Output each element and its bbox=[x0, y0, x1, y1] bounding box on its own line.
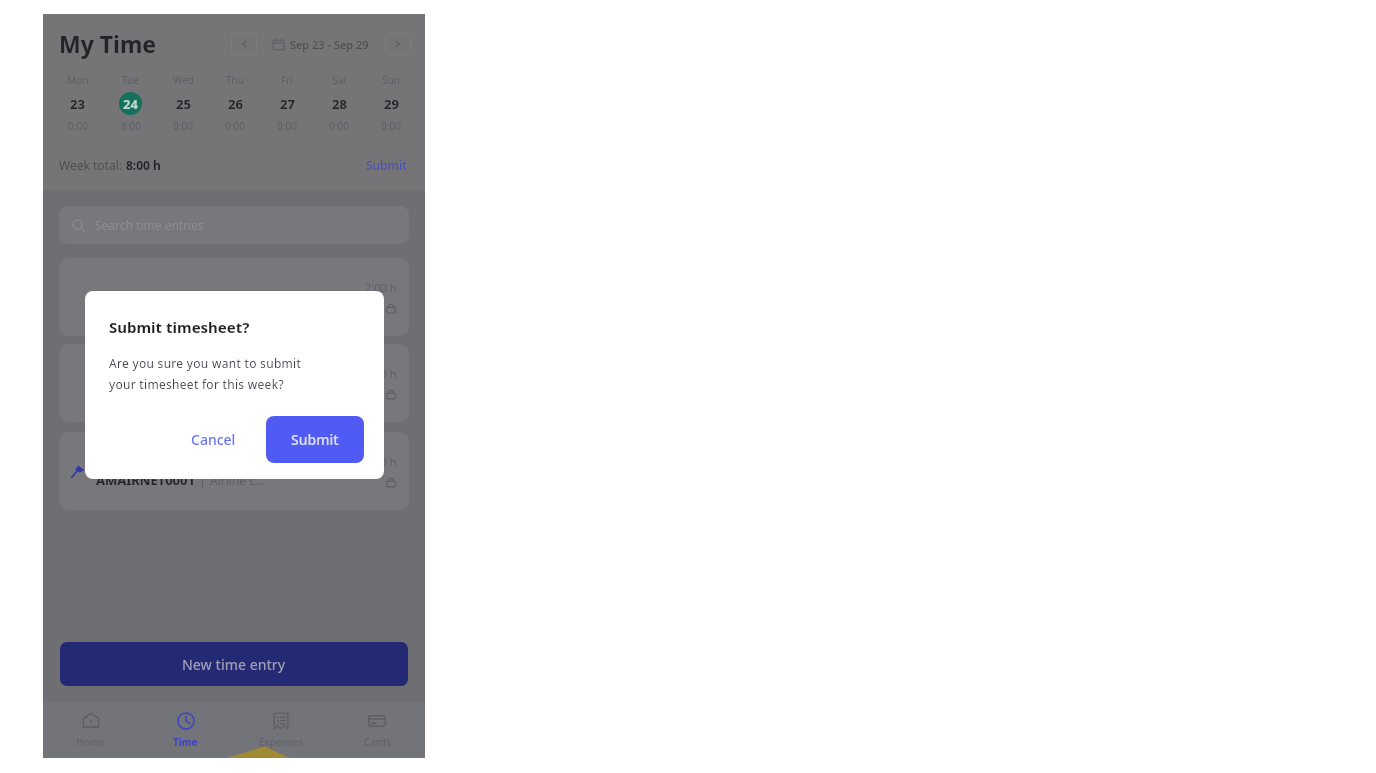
staticText: 26 bbox=[228, 95, 243, 113]
staticText: Thu bbox=[226, 73, 244, 87]
button[interactable]: Cancel bbox=[177, 422, 250, 457]
staticText: Sun bbox=[382, 73, 400, 87]
button[interactable]: Expenses bbox=[233, 702, 329, 758]
staticText: 0:00 bbox=[68, 119, 88, 133]
staticText: 0:00 bbox=[277, 119, 297, 133]
staticText: Sat bbox=[332, 73, 347, 87]
staticText: Week total: bbox=[59, 157, 126, 173]
staticText: New time entry bbox=[182, 655, 286, 674]
button[interactable]: Submit bbox=[364, 155, 409, 175]
staticText: Sep 23 - Sep 29 bbox=[290, 37, 369, 52]
staticText: Time bbox=[173, 735, 198, 749]
staticText: 24 bbox=[123, 95, 138, 113]
staticText: Home bbox=[76, 735, 105, 749]
button[interactable]: Wed bbox=[157, 73, 209, 133]
staticText: My Time bbox=[59, 28, 157, 59]
staticText: Submit bbox=[291, 430, 339, 449]
staticText: Expenses bbox=[259, 735, 304, 749]
button[interactable]: Sun bbox=[365, 73, 417, 133]
staticText: 0:00 bbox=[329, 119, 349, 133]
button[interactable]: Next week bbox=[385, 33, 411, 55]
staticText: | bbox=[199, 471, 210, 489]
staticText: Fri bbox=[281, 73, 293, 87]
staticText: Cards bbox=[364, 735, 391, 749]
staticText: 29 bbox=[384, 95, 399, 113]
staticText: 25 bbox=[176, 95, 191, 113]
staticText: Tue bbox=[122, 73, 139, 87]
button[interactable]: Submit bbox=[266, 416, 364, 463]
button[interactable]: Time bbox=[138, 702, 233, 758]
button[interactable]: Sep 23 - Sep 29 bbox=[264, 33, 378, 55]
staticText: 23 bbox=[70, 95, 85, 113]
staticText: 8:00 bbox=[121, 119, 141, 133]
staticText: 8:00 h bbox=[126, 157, 161, 173]
staticText: 28 bbox=[332, 95, 347, 113]
staticText: 2:00 h bbox=[365, 366, 397, 381]
staticText: 0:00 bbox=[173, 119, 193, 133]
button[interactable]: Sat bbox=[313, 73, 365, 133]
button[interactable]: Tue bbox=[104, 73, 157, 133]
staticText: Mon bbox=[67, 73, 89, 87]
staticText: 27 bbox=[280, 95, 295, 113]
staticText: Submit timesheet? bbox=[109, 317, 250, 337]
staticText: Cancel bbox=[191, 430, 236, 449]
button[interactable]: Fri bbox=[261, 73, 313, 133]
button[interactable]: Thu bbox=[209, 73, 261, 133]
staticText: AMAIRNET0001 bbox=[96, 471, 199, 489]
staticText: Wed bbox=[173, 73, 194, 87]
staticText: Submit bbox=[366, 157, 407, 173]
staticText: 2:00 h bbox=[365, 280, 397, 295]
button[interactable]: Cards bbox=[329, 702, 425, 758]
staticText: Search time entries bbox=[95, 217, 204, 233]
staticText: 2:00 h bbox=[365, 454, 397, 469]
staticText: 0:00 bbox=[225, 119, 245, 133]
staticText: Airline L... bbox=[210, 472, 266, 488]
button[interactable]: New time entry bbox=[60, 642, 408, 686]
staticText: Are you sure you want to submit bbox=[109, 355, 302, 371]
staticText: 0:00 bbox=[381, 119, 401, 133]
button[interactable]: Previous week bbox=[231, 33, 257, 55]
button[interactable]: Mon bbox=[51, 73, 104, 133]
button[interactable]: Amsterdam Airways - Nether... bbox=[59, 432, 409, 510]
button[interactable]: 2:00 h bbox=[59, 344, 409, 422]
staticText: your timesheet for this week? bbox=[109, 376, 284, 392]
button[interactable]: 2:00 h bbox=[59, 258, 409, 336]
